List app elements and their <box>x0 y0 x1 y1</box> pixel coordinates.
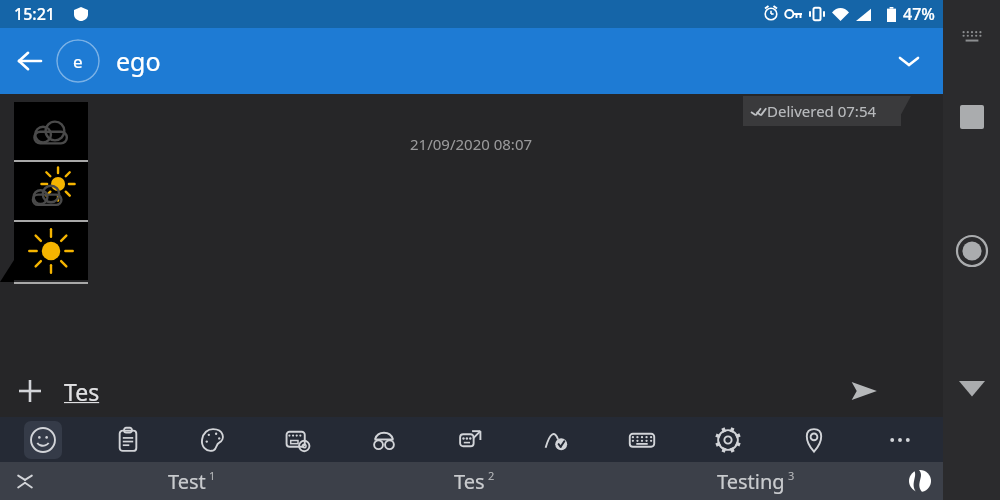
button[interactable]: Back <box>8 39 52 83</box>
button[interactable]: Change language <box>897 462 943 500</box>
button[interactable]: Weather <box>14 222 88 280</box>
button[interactable]: Collapse <box>0 462 50 500</box>
button[interactable]: More <box>857 417 943 462</box>
button[interactable]: Emoji <box>0 417 85 462</box>
button[interactable]: Keyboard <box>599 417 685 462</box>
button[interactable]: Recents <box>952 97 992 137</box>
button[interactable]: Incognito <box>341 417 427 462</box>
button[interactable]: Keyboard settings <box>255 417 341 462</box>
staticText: e <box>73 50 83 73</box>
staticText: 21/09/2020 08:07 <box>410 134 533 154</box>
button[interactable]: Home <box>949 228 995 274</box>
button[interactable]: Clipboard <box>85 417 170 462</box>
button[interactable]: Location <box>771 417 857 462</box>
button[interactable]: Expand <box>887 39 931 83</box>
button[interactable]: Theme <box>170 417 255 462</box>
staticText: Test <box>168 468 206 495</box>
button[interactable]: Settings <box>685 417 771 462</box>
button[interactable]: Floating keyboard <box>427 417 513 462</box>
button[interactable]: Add attachment <box>8 369 52 413</box>
button[interactable]: e <box>56 39 100 83</box>
button[interactable]: Weather <box>14 102 88 160</box>
button[interactable]: Gesture typing <box>513 417 599 462</box>
staticText: 1 <box>209 468 216 483</box>
button[interactable]: Testing <box>615 462 897 500</box>
staticText: Testing <box>717 468 785 495</box>
button[interactable]: Test <box>50 462 333 500</box>
staticText: 47% <box>903 3 935 25</box>
staticText: Tes <box>454 468 485 495</box>
staticText: 15:21 <box>14 3 55 25</box>
staticText: ego <box>116 44 161 78</box>
button[interactable]: Send <box>841 368 887 414</box>
button[interactable]: Weather <box>14 162 88 220</box>
staticText: 3 <box>788 468 795 483</box>
staticText: 2 <box>488 468 495 483</box>
button[interactable]: Tes <box>333 462 615 500</box>
staticText: Delivered 07:54 <box>767 101 877 121</box>
staticText: Tes <box>64 376 100 407</box>
button[interactable]: Back <box>952 368 992 408</box>
